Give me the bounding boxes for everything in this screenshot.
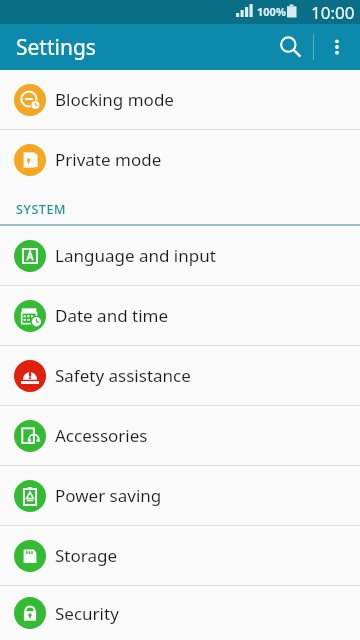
staticText: Date and time <box>55 304 169 327</box>
staticText: Language and input <box>55 244 216 267</box>
button[interactable]: Accessories <box>0 406 360 465</box>
staticText: Settings <box>16 33 96 62</box>
button[interactable]: Security <box>0 586 360 640</box>
staticText: Security <box>55 602 119 625</box>
staticText: Accessories <box>55 424 148 447</box>
staticText: 100% <box>257 4 286 19</box>
button[interactable]: Power saving <box>0 466 360 525</box>
button[interactable]: Safety assistance <box>0 346 360 405</box>
button[interactable]: Language and input <box>0 226 360 285</box>
staticText: Safety assistance <box>55 364 191 387</box>
button[interactable]: Blocking mode <box>0 70 360 129</box>
staticText: SYSTEM <box>16 201 67 218</box>
staticText: Power saving <box>55 484 162 507</box>
staticText: Private mode <box>55 148 162 171</box>
button[interactable]: Storage <box>0 526 360 585</box>
button[interactable]: Private mode <box>0 130 360 189</box>
button[interactable]: Search <box>267 24 313 70</box>
staticText: Blocking mode <box>55 88 174 111</box>
staticText: Storage <box>55 544 118 567</box>
staticText: 10:00 <box>311 1 355 24</box>
button[interactable]: More options <box>314 24 360 70</box>
button[interactable]: Date and time <box>0 286 360 345</box>
